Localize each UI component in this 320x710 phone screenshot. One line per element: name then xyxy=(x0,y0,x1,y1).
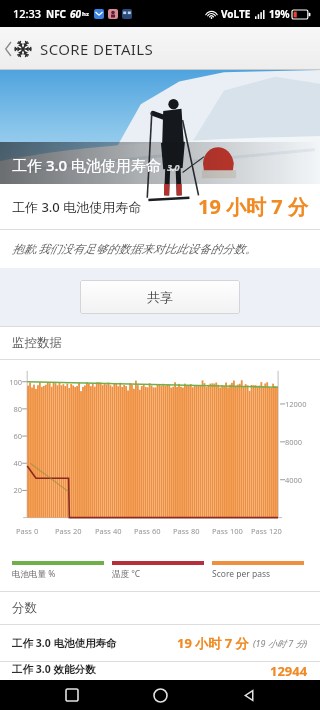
button[interactable]: Back xyxy=(232,680,266,710)
staticText: 分数 xyxy=(12,600,37,616)
staticText: 12:33 xyxy=(13,6,42,21)
staticText: 20 xyxy=(2,485,22,495)
staticText: Pass 0 xyxy=(16,526,39,536)
staticText: Pass 60 xyxy=(134,526,161,536)
button[interactable]: 共享 xyxy=(80,280,240,314)
staticText: Pass 20 xyxy=(55,526,82,536)
staticText: hz xyxy=(82,10,89,18)
staticText: Pass 40 xyxy=(95,526,122,536)
staticText: NFC xyxy=(46,7,67,21)
staticText: 3.0 xyxy=(167,161,180,173)
staticText: 12000 xyxy=(285,399,307,409)
staticText: 60 xyxy=(2,431,22,441)
staticText: Pass 120 xyxy=(251,526,282,536)
staticText: Score per pass xyxy=(212,568,271,580)
staticText: 4000 xyxy=(285,475,303,485)
staticText: 12944 xyxy=(270,662,308,680)
staticText: 19 小时 7 分 xyxy=(198,193,308,220)
staticText: 工作 3.0 电池使用寿命 xyxy=(12,155,162,175)
staticText: Pass 100 xyxy=(212,526,243,536)
staticText: 共享 xyxy=(147,289,173,305)
staticText: (19 小时 7 分) xyxy=(253,637,308,649)
staticText: 60 xyxy=(70,7,82,21)
staticText: Pass 80 xyxy=(173,526,200,536)
staticText: 100 xyxy=(2,377,22,387)
staticText: 80 xyxy=(2,404,22,414)
staticText: 40 xyxy=(2,458,22,468)
staticText: SCORE DETAILS xyxy=(40,39,154,59)
button[interactable]: 工作 3.0 电池使用寿命 xyxy=(12,625,308,661)
staticText: 19 小时 7 分 xyxy=(177,634,249,652)
button[interactable]: SCORE DETAILS xyxy=(0,27,164,70)
button[interactable]: Recent apps xyxy=(55,680,89,710)
staticText: 工作 3.0 电池使用寿命 xyxy=(12,198,142,216)
staticText: VoLTE xyxy=(221,7,251,21)
staticText: 工作 3.0 效能分数 xyxy=(12,662,96,676)
button[interactable]: Home xyxy=(143,680,177,710)
staticText: 工作 3.0 电池使用寿命 xyxy=(12,636,117,650)
staticText: 19% xyxy=(269,7,290,21)
staticText: 温度 °C xyxy=(112,568,141,580)
staticText: 抱歉,我们没有足够的数据来对比此设备的分数。 xyxy=(12,241,257,257)
staticText: 监控数据 xyxy=(12,335,62,351)
staticText: 电池电量 % xyxy=(12,568,56,580)
staticText: 8000 xyxy=(285,437,303,447)
